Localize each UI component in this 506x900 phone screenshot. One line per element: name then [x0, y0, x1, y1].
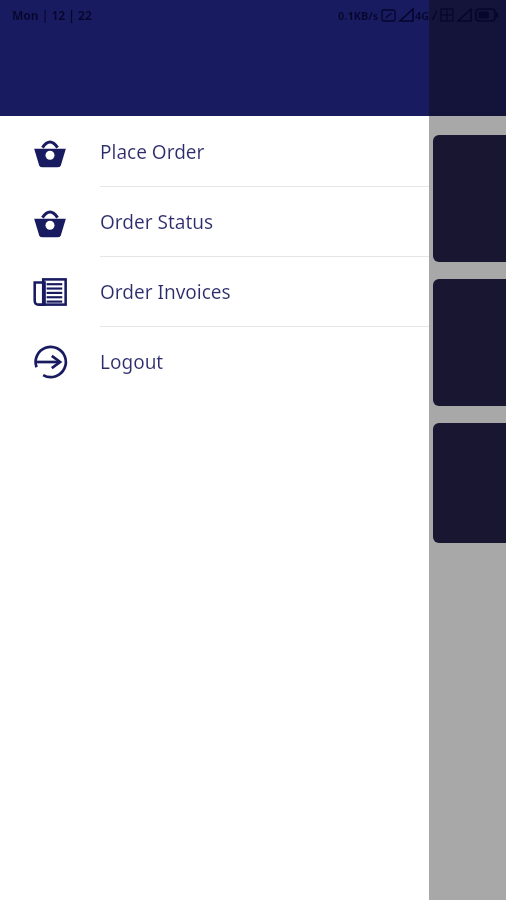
staticText: 4G — [415, 8, 430, 23]
staticText: 0.1KB/s — [338, 8, 379, 23]
button[interactable] — [433, 279, 506, 406]
staticText: Order Invoices — [100, 279, 231, 305]
other: Logout — [32, 344, 68, 380]
button[interactable]: Basket — [0, 117, 429, 186]
staticText: Mon | 12 | 22 — [12, 7, 92, 23]
button[interactable] — [433, 135, 506, 262]
other: Invoices — [33, 277, 67, 307]
staticText: Order Status — [100, 209, 214, 235]
button[interactable]: Basket — [0, 187, 429, 256]
other: Basket — [32, 136, 68, 168]
button[interactable]: Logout — [0, 327, 429, 396]
button[interactable]: Invoices — [0, 257, 429, 326]
staticText: Place Order — [100, 139, 205, 165]
staticText: Logout — [100, 349, 164, 375]
button[interactable] — [433, 423, 506, 543]
other: Basket — [32, 206, 68, 238]
